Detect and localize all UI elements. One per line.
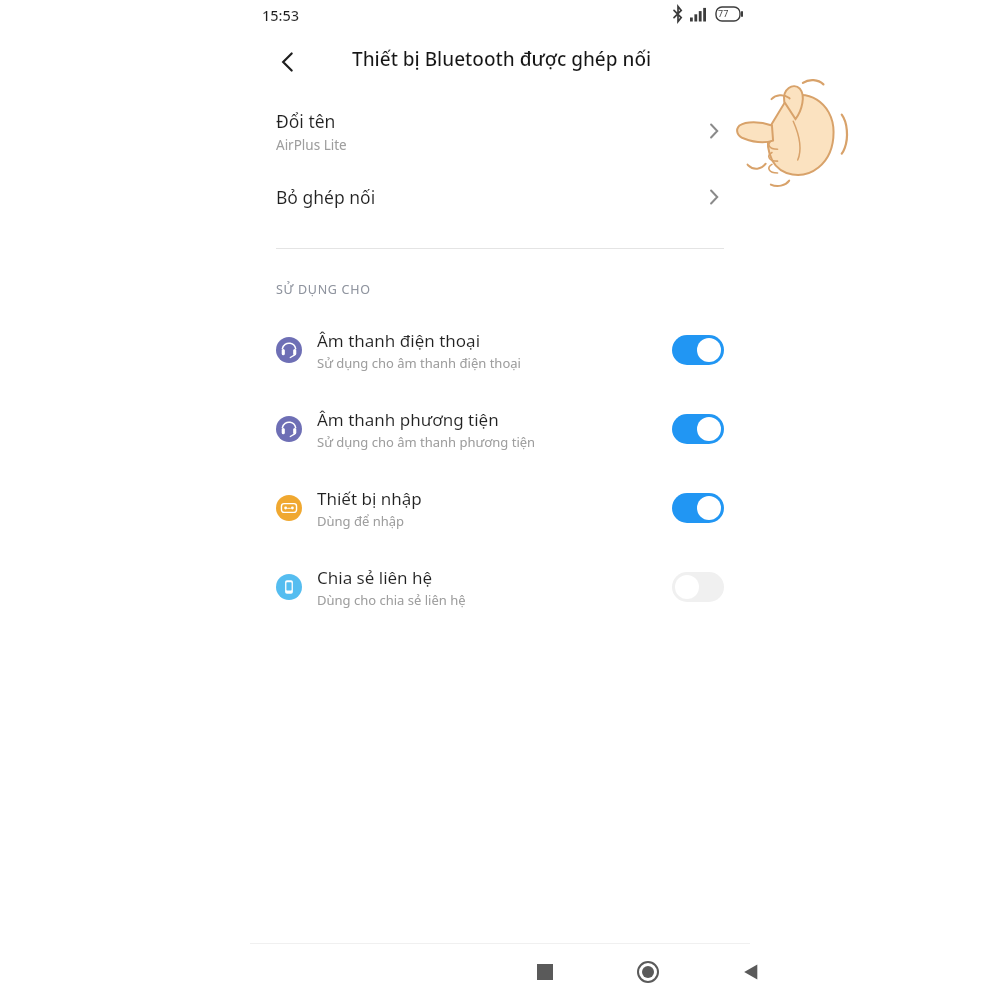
button[interactable]: Âm thanh phương tiện: [276, 401, 724, 457]
button[interactable]: Recents: [515, 944, 575, 1000]
staticText: Đổi tên: [276, 109, 336, 133]
button[interactable]: Bỏ ghép nối: [276, 170, 724, 224]
button[interactable]: On: [672, 493, 724, 523]
button[interactable]: Back: [265, 42, 305, 82]
staticText: Thiết bị Bluetooth được ghép nối: [352, 46, 652, 72]
staticText: 77: [718, 7, 729, 19]
button[interactable]: On: [672, 335, 724, 365]
staticText: 15:53: [262, 5, 300, 25]
staticText: Thiết bị nhập: [317, 487, 422, 510]
staticText: Dùng để nhập: [317, 512, 405, 530]
staticText: Chia sẻ liên hệ: [317, 566, 433, 589]
button[interactable]: Thiết bị nhập: [276, 480, 724, 536]
button[interactable]: Home: [618, 944, 678, 1000]
staticText: Dùng cho chia sẻ liên hệ: [317, 591, 466, 609]
staticText: Âm thanh điện thoại: [317, 329, 481, 352]
staticText: Sử dụng cho âm thanh phương tiện: [317, 433, 536, 451]
staticText: SỬ DỤNG CHO: [276, 281, 371, 298]
staticText: Âm thanh phương tiện: [317, 408, 499, 431]
staticText: AirPlus Lite: [276, 136, 347, 154]
button[interactable]: Back: [721, 944, 781, 1000]
button[interactable]: On: [672, 414, 724, 444]
button[interactable]: Off: [672, 572, 724, 602]
button[interactable]: Đổi tên: [276, 100, 724, 162]
button[interactable]: Chia sẻ liên hệ: [276, 559, 724, 615]
staticText: Sử dụng cho âm thanh điện thoại: [317, 354, 521, 372]
staticText: Bỏ ghép nối: [276, 185, 376, 209]
button[interactable]: Âm thanh điện thoại: [276, 322, 724, 378]
